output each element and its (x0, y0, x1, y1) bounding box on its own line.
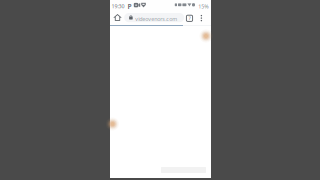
button[interactable]: More options (196, 11, 206, 26)
staticText: P (127, 2, 131, 11)
button[interactable]: Tabs (184, 11, 195, 26)
staticText: 7 (188, 16, 190, 21)
button[interactable]: Home (111, 10, 124, 25)
staticText: 19:30 (112, 3, 125, 10)
staticText: 15% (198, 3, 208, 10)
staticText: videovenors.com (135, 15, 177, 22)
button[interactable]: Address bar (124, 13, 184, 22)
